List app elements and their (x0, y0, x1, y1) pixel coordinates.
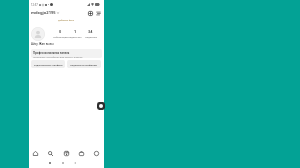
staticText: Профессиональная панель (33, 51, 70, 55)
button[interactable]: New post (87, 10, 93, 16)
staticText: Поделиться профилем (70, 63, 98, 66)
staticText: 1 (74, 29, 77, 34)
button[interactable]: Screen recorder (97, 102, 105, 110)
staticText: Редактировать профиль (34, 63, 63, 66)
staticText: Публикации (53, 35, 68, 38)
staticText: Посмотрите, как работает ваш контент, и … (33, 56, 83, 58)
button[interactable]: Home (61, 161, 65, 165)
button[interactable]: Profile photo (31, 27, 45, 41)
button[interactable]: 0 (53, 29, 68, 38)
button[interactable]: Recents (48, 161, 52, 165)
button[interactable]: Profile (92, 149, 100, 157)
button[interactable]: Search (46, 149, 54, 157)
button[interactable]: 1 (68, 29, 83, 38)
button[interactable]: Профессиональная панель (31, 49, 102, 58)
staticText: Айсу Жан кызы (31, 42, 54, 46)
staticText: mdxgjo2195 (31, 10, 56, 16)
button[interactable]: Добавьте фото (55, 18, 77, 22)
button[interactable]: 34 (83, 29, 98, 38)
button[interactable]: Reels (62, 149, 70, 157)
button[interactable]: Menu (95, 10, 101, 16)
staticText: Подписки (85, 35, 97, 38)
button[interactable]: Back (73, 161, 77, 165)
button[interactable]: Поделиться профилем (67, 60, 101, 68)
staticText: 0 (59, 29, 62, 34)
staticText: 12:57 (31, 3, 38, 7)
button[interactable]: Home (31, 149, 39, 157)
button[interactable]: Shop (77, 149, 85, 157)
staticText: 34 (88, 29, 93, 34)
staticText: Подписчики (68, 35, 83, 38)
staticText: Добавьте фото (58, 19, 74, 22)
button[interactable]: Редактировать профиль (31, 60, 65, 68)
